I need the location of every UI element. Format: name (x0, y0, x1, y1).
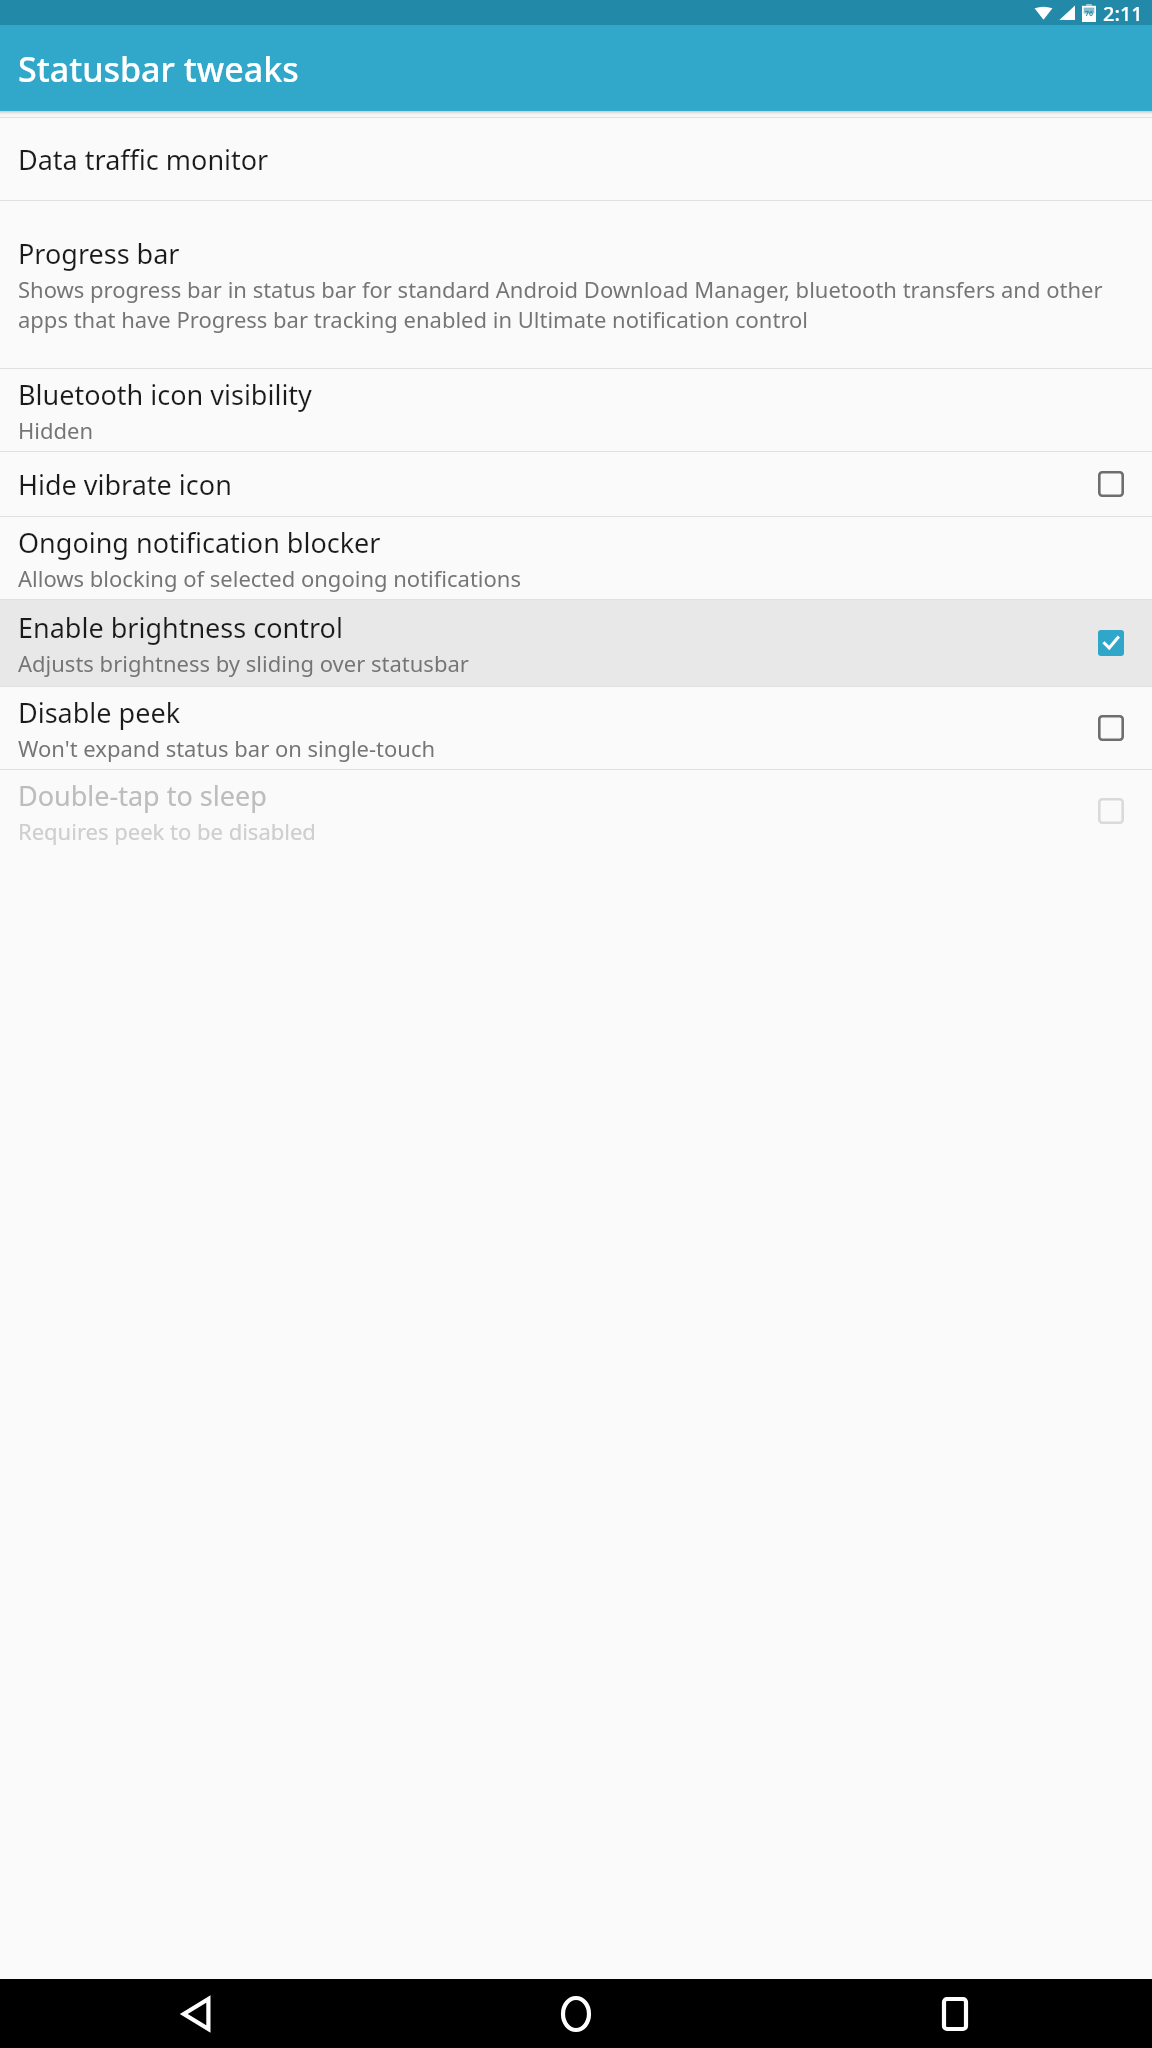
button[interactable]: Bluetooth icon visibility (0, 369, 1152, 451)
button[interactable]: Unchecked (1088, 788, 1134, 834)
staticText: 2:11 (1103, 0, 1143, 25)
button[interactable]: Ongoing notification blocker (0, 517, 1152, 599)
button[interactable]: Unchecked (1088, 705, 1134, 751)
staticText: Allows blocking of selected ongoing noti… (18, 563, 521, 593)
staticText: Won't expand status bar on single-touch (18, 733, 436, 763)
button[interactable]: Hide vibrate icon (0, 452, 1152, 516)
button[interactable]: Progress bar (0, 201, 1152, 368)
button[interactable]: Double-tap to sleep (0, 770, 1152, 852)
staticText: Shows progress bar in status bar for sta… (18, 274, 1134, 334)
staticText: Disable peek (18, 694, 181, 731)
staticText: Hidden (18, 415, 94, 445)
staticText: Bluetooth icon visibility (18, 376, 312, 413)
button[interactable]: Back (8, 1979, 386, 2048)
staticText: Data traffic monitor (18, 141, 269, 178)
button[interactable]: Recent apps (765, 1979, 1144, 2048)
button[interactable]: Enable brightness control (0, 600, 1152, 686)
staticText: Adjusts brightness by sliding over statu… (18, 648, 469, 678)
button[interactable]: Disable peek (0, 687, 1152, 769)
staticText: 76 (1085, 9, 1094, 19)
button[interactable]: Unchecked (1088, 461, 1134, 507)
staticText: Hide vibrate icon (18, 466, 232, 503)
staticText: Ongoing notification blocker (18, 524, 381, 561)
staticText: Requires peek to be disabled (18, 816, 316, 846)
staticText: Statusbar tweaks (18, 46, 299, 92)
button[interactable]: Home (386, 1979, 765, 2048)
staticText: Double-tap to sleep (18, 777, 267, 814)
button[interactable]: Checked (1088, 620, 1134, 666)
staticText: Enable brightness control (18, 609, 343, 646)
button[interactable]: Data traffic monitor (0, 118, 1152, 200)
staticText: Progress bar (18, 235, 180, 272)
